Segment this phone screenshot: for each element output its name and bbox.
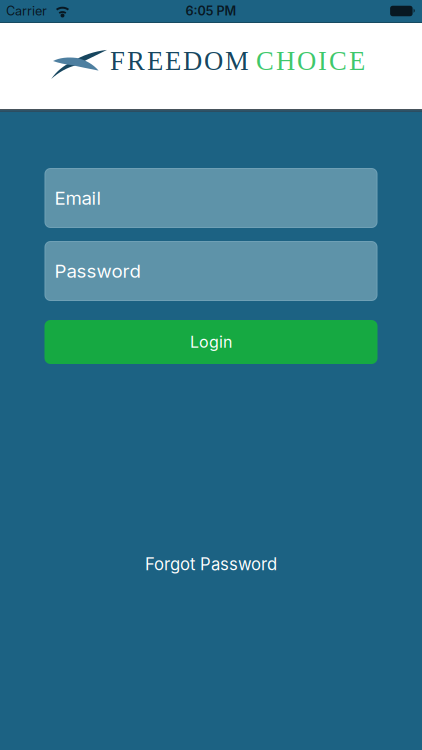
button[interactable]: Login [44,320,377,364]
staticText: Forgot Password [145,554,277,574]
staticText: 6:05 PM [185,3,236,19]
staticText: CHOICE [256,46,365,76]
staticText: Email [54,187,101,209]
staticText: Carrier [6,3,47,19]
staticText: Password [54,260,140,282]
staticText: Login [190,332,232,352]
button[interactable]: Forgot Password [145,554,277,574]
button[interactable]: Password [44,241,377,301]
staticText: FREEDOM [110,46,249,76]
button[interactable]: Email [44,168,377,228]
